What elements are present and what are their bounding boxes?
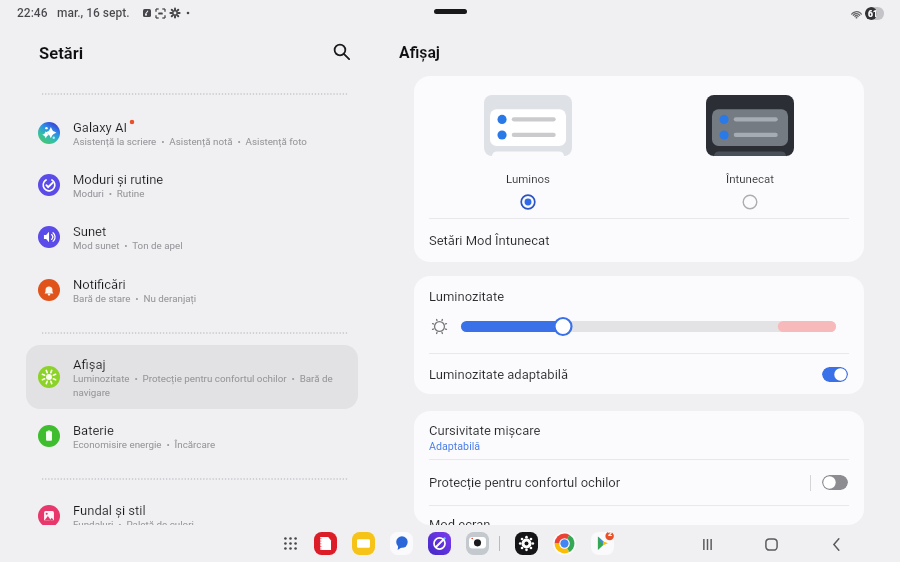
button[interactable]: Sunet	[26, 213, 358, 261]
button[interactable]: Baterie	[26, 412, 358, 460]
staticText: Mod ecran	[429, 517, 491, 525]
staticText: Cursivitate mișcare	[429, 423, 541, 438]
staticText: Mod sunet • Ton de apel	[73, 240, 183, 251]
staticText: Luminozitate • Protecție pentru confortu…	[73, 373, 348, 398]
staticText: Asistență la scriere • Asistență notă • …	[73, 136, 307, 147]
staticText: Moduri • Rutine	[73, 188, 145, 199]
button[interactable]: Întunecat	[675, 95, 825, 210]
button[interactable]: Galaxy AI	[26, 109, 358, 157]
button[interactable]: Notificări	[26, 266, 358, 314]
button[interactable]: Moduri și rutine	[26, 161, 358, 209]
button[interactable]: Messages	[388, 530, 415, 557]
button[interactable]: Home	[756, 529, 786, 559]
button[interactable]: All apps	[277, 530, 304, 557]
staticText: Bară de stare • Nu deranjați	[73, 293, 197, 304]
staticText: Întunecat	[726, 172, 775, 185]
button[interactable]: Settings	[513, 530, 540, 557]
staticText: Luminos	[506, 172, 551, 185]
staticText: Notificări	[73, 277, 126, 292]
button[interactable]: Fundal și stil	[26, 492, 358, 525]
button[interactable]: Cursivitate mișcare	[414, 411, 864, 459]
staticText: 61	[868, 9, 878, 19]
button[interactable]	[461, 316, 836, 337]
staticText: Luminozitate	[429, 289, 505, 304]
staticText: Sunet	[73, 224, 107, 239]
button[interactable]: Afișaj	[26, 345, 358, 409]
button[interactable]: My Files	[350, 530, 377, 557]
button[interactable]	[822, 367, 848, 382]
staticText: Galaxy AI	[73, 120, 127, 135]
staticText: Setări	[39, 44, 84, 63]
staticText: 22:46	[17, 6, 48, 20]
staticText: Luminozitate adaptabilă	[429, 367, 569, 382]
staticText: Afișaj	[73, 357, 106, 372]
button[interactable]: Recents	[692, 529, 722, 559]
staticText: Baterie	[73, 423, 114, 438]
button[interactable]: Search	[326, 36, 356, 66]
button[interactable]: Camera	[464, 530, 491, 557]
staticText: Protecție pentru confortul ochilor	[429, 475, 621, 490]
staticText: Adaptabilă	[429, 440, 481, 453]
button[interactable]: Internet	[426, 530, 453, 557]
staticText: mar., 16 sept.	[57, 6, 130, 20]
button[interactable]: Back	[821, 529, 851, 559]
button[interactable]: Luminos	[453, 95, 603, 210]
staticText: Moduri și rutine	[73, 172, 164, 187]
button[interactable]: Protecție pentru confortul ochilor	[414, 460, 864, 505]
staticText: Afișaj	[399, 43, 440, 62]
button[interactable]: Play Store	[589, 530, 616, 557]
staticText: Fundaluri • Paletă de culori	[73, 519, 194, 525]
button[interactable]: Samsung Notes	[312, 530, 339, 557]
staticText: Economisire energie • Încărcare	[73, 439, 216, 450]
button[interactable]: Luminozitate adaptabilă	[414, 354, 864, 394]
staticText: Fundal și stil	[73, 503, 146, 518]
button[interactable]: Chrome	[551, 530, 578, 557]
staticText: 2	[608, 530, 613, 538]
button[interactable]: Setări Mod Întunecat	[414, 219, 864, 262]
button[interactable]	[822, 475, 848, 490]
staticText: Setări Mod Întunecat	[429, 233, 550, 248]
